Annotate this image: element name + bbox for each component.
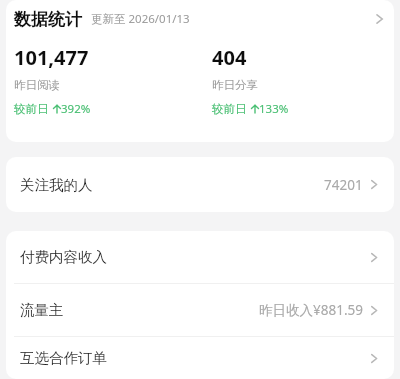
staticText: 74201 xyxy=(324,176,363,194)
staticText: 101,477 xyxy=(14,44,89,71)
staticText: 昨日收入¥881.59 xyxy=(259,301,363,319)
staticText: 较前日 xyxy=(14,102,49,116)
staticText: 404 xyxy=(212,44,247,71)
staticText: 流量主 xyxy=(20,301,64,319)
staticText: 付费内容收入 xyxy=(20,248,107,266)
button[interactable]: 流量主 xyxy=(6,284,394,336)
staticText: 关注我的人 xyxy=(20,176,93,194)
staticText: 133% xyxy=(259,101,289,117)
button[interactable]: 付费内容收入 xyxy=(6,231,394,283)
staticText: 互选合作订单 xyxy=(20,349,107,367)
staticText: 昨日分享 xyxy=(212,78,258,92)
button[interactable]: 数据统计 xyxy=(6,0,394,38)
staticText: 昨日阅读 xyxy=(14,78,60,92)
staticText: 数据统计 xyxy=(14,9,82,30)
button[interactable]: 关注我的人 xyxy=(6,157,394,212)
staticText: 392% xyxy=(61,101,91,117)
button[interactable]: 互选合作订单 xyxy=(6,337,394,379)
staticText: 较前日 xyxy=(212,102,247,116)
staticText: 更新至 2026/01/13 xyxy=(91,11,190,27)
